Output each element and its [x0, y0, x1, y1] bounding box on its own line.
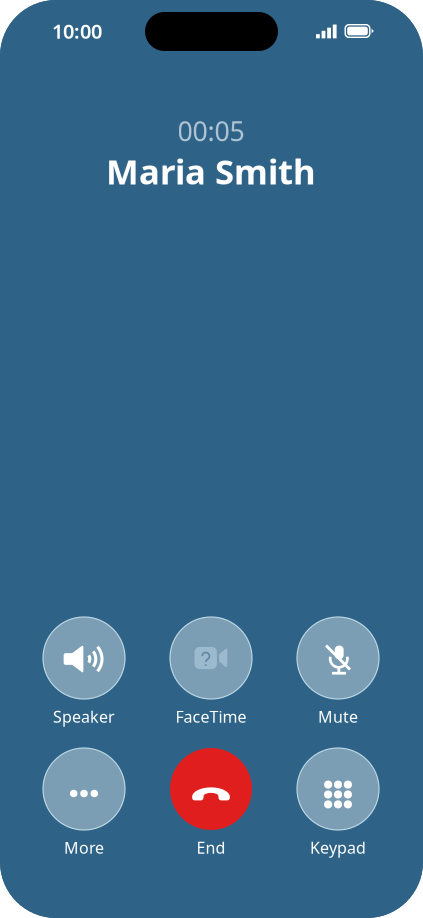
- button[interactable]: FaceTime: [155, 617, 267, 725]
- staticText: End: [196, 837, 225, 858]
- button[interactable]: More: [28, 748, 140, 856]
- staticText: Maria Smith: [106, 148, 316, 194]
- staticText: Mute: [318, 706, 358, 727]
- staticText: 00:05: [177, 113, 244, 149]
- staticText: 10:00: [52, 18, 102, 44]
- button[interactable]: Keypad: [282, 748, 394, 856]
- button[interactable]: End: [155, 748, 267, 856]
- staticText: Speaker: [53, 706, 115, 727]
- button[interactable]: Speaker: [28, 617, 140, 725]
- staticText: Keypad: [310, 837, 366, 858]
- staticText: FaceTime: [175, 706, 246, 727]
- staticText: More: [64, 837, 104, 858]
- button[interactable]: Mute: [282, 617, 394, 725]
